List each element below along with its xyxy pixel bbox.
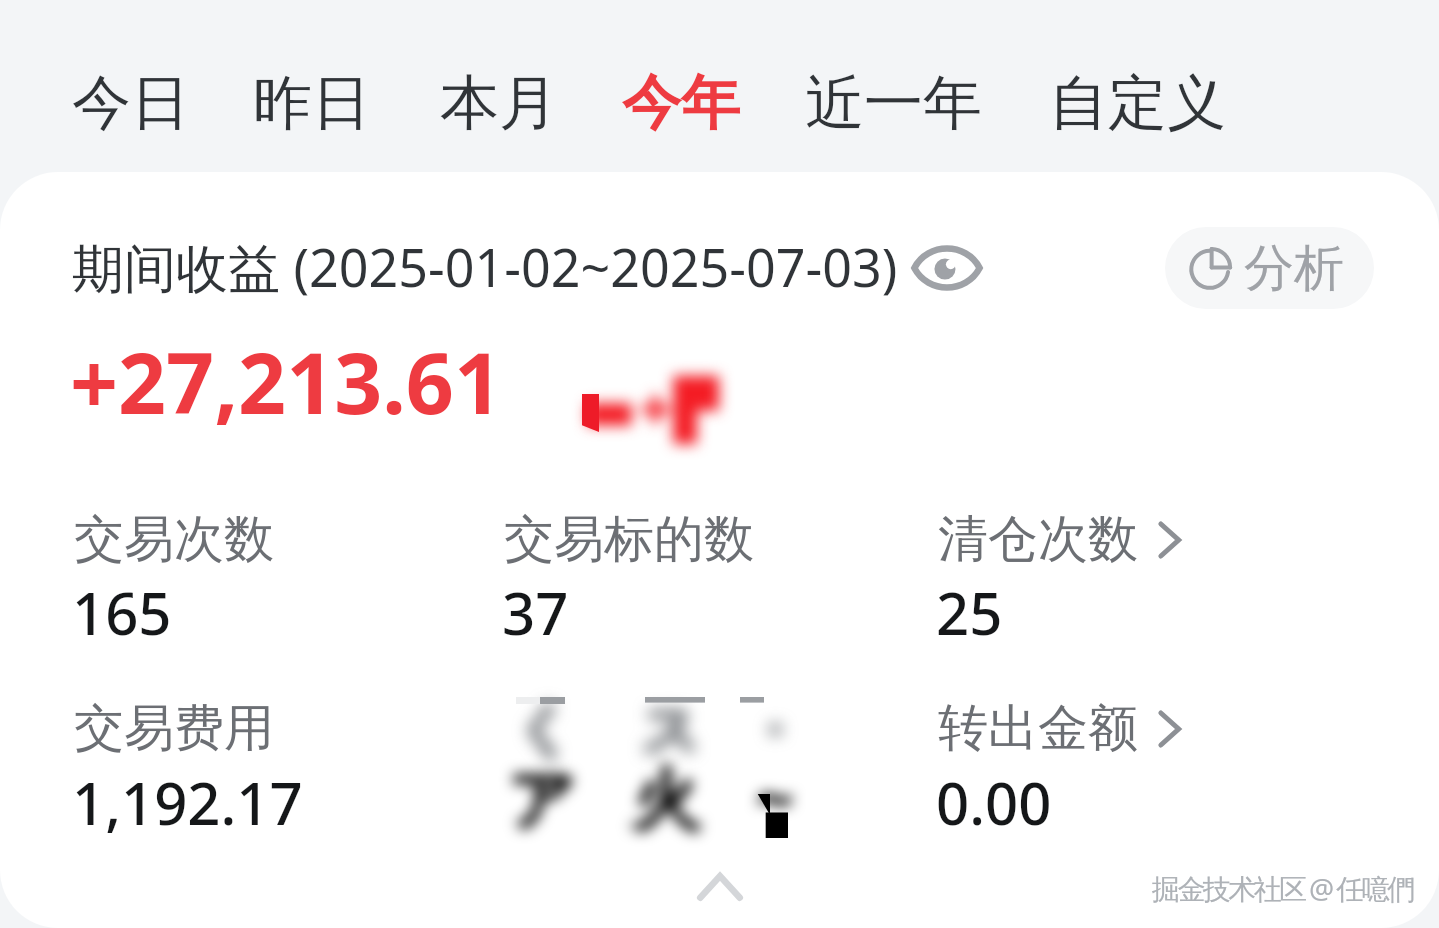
staticText: 期间收益 (2025-01-02~2025-07-03) <box>72 231 898 302</box>
staticText: 今日 <box>72 66 190 140</box>
staticText: ▬+▛ <box>583 369 721 445</box>
button[interactable]: 昨日 <box>239 56 385 150</box>
staticText: 分析 <box>1244 237 1344 300</box>
button[interactable]: 今日 <box>58 56 204 150</box>
staticText: 掘金技术社区 @ 任噫們 <box>1152 869 1413 907</box>
button[interactable]: 本月 <box>426 56 572 150</box>
button[interactable]: 交易费用 <box>72 693 472 842</box>
staticText: 25 <box>936 573 1003 652</box>
button[interactable]: 自定义 <box>1035 56 1240 150</box>
staticText: +27,213.61 <box>70 324 502 438</box>
staticText: 交易次数 <box>74 508 274 571</box>
staticText: ア 火 ~ <box>508 752 815 842</box>
staticText: 转出金额 <box>938 697 1138 760</box>
button[interactable]: 近一年 <box>791 56 996 150</box>
staticText: 165 <box>72 573 172 652</box>
staticText: 自定义 <box>1049 66 1226 140</box>
staticText: 近一年 <box>805 66 982 140</box>
staticText: 1,192.17 <box>72 763 303 842</box>
staticText: 本月 <box>440 66 558 140</box>
button[interactable]: 转出金额 <box>936 693 1336 842</box>
button[interactable]: Toggle amount visibility <box>913 241 981 295</box>
button[interactable]: 分析 <box>1165 227 1374 309</box>
staticText: 0.00 <box>936 763 1052 842</box>
staticText: 交易费用 <box>74 697 274 760</box>
button[interactable]: 今年 <box>608 56 754 150</box>
staticText: 交易标的数 <box>504 508 754 571</box>
button[interactable]: 清仓次数 <box>936 504 1336 652</box>
staticText: 37 <box>502 573 569 652</box>
staticText: 清仓次数 <box>938 508 1138 571</box>
staticText: く ス · <box>514 688 810 767</box>
button[interactable]: Collapse <box>676 856 764 916</box>
button[interactable]: 交易次数 <box>72 504 472 652</box>
staticText: 今年 <box>622 66 740 140</box>
staticText: 昨日 <box>253 66 371 140</box>
button[interactable]: 交易标的数 <box>502 504 902 652</box>
